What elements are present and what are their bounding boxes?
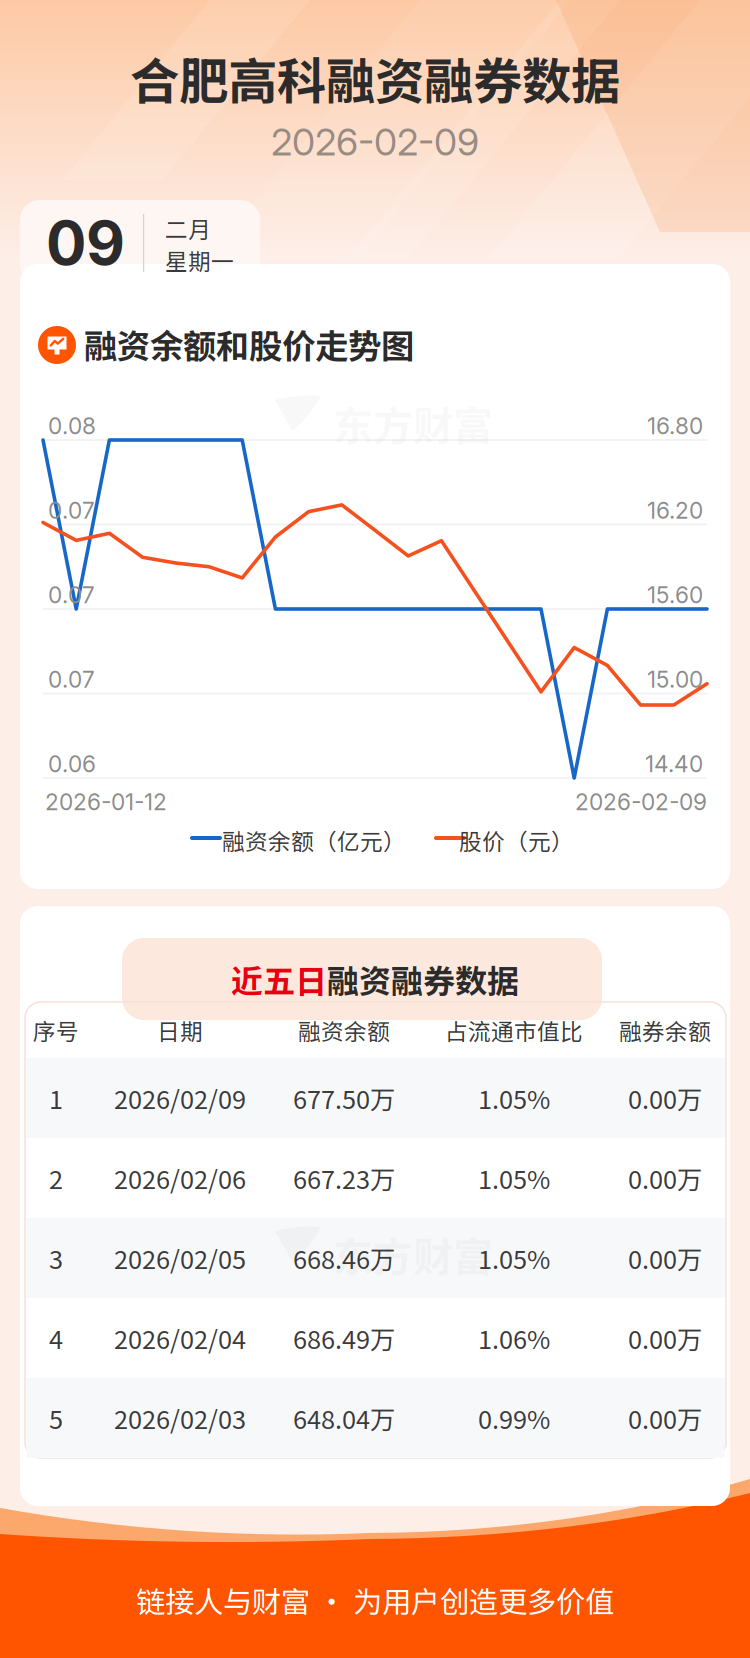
staticText: 667.23万 <box>293 1160 395 1196</box>
staticText: 日期 <box>157 1014 203 1046</box>
staticText: 14.40 <box>645 750 703 778</box>
staticText: 677.50万 <box>293 1080 395 1116</box>
staticText: 星期一 <box>165 244 234 276</box>
staticText: 5 <box>49 1400 63 1436</box>
staticText: 融资余额（亿元） <box>222 824 406 856</box>
staticText: 2026/02/09 <box>114 1080 246 1116</box>
staticText: 2026/02/04 <box>114 1320 246 1356</box>
staticText: 0.07 <box>48 581 95 609</box>
staticText: 0.08 <box>48 412 96 440</box>
staticText: 16.80 <box>647 412 703 440</box>
staticText: 融资融券数据 <box>327 956 519 1002</box>
staticText: 648.04万 <box>293 1400 395 1436</box>
staticText: 2 <box>49 1160 63 1196</box>
staticText: 股价（元） <box>459 824 574 856</box>
staticText: 链接人与财富 · 为用户创造更多价值 <box>136 1579 614 1621</box>
staticText: 2026/02/06 <box>114 1160 246 1196</box>
staticText: 0.07 <box>48 497 95 524</box>
staticText: 东方财富 <box>333 1225 493 1283</box>
staticText: 15.60 <box>647 581 703 609</box>
staticText: 合肥高科融资融券数据 <box>130 42 620 114</box>
staticText: 序号 <box>33 1014 79 1046</box>
staticText: 1.05% <box>478 1160 550 1196</box>
staticText: 东方财富 <box>333 394 493 452</box>
staticText: 1.05% <box>478 1240 550 1276</box>
staticText: 3 <box>49 1240 63 1276</box>
staticText: 16.20 <box>647 497 703 524</box>
staticText: 占流通市值比 <box>445 1014 583 1046</box>
staticText: 近五日 <box>231 956 327 1002</box>
staticText: 2026-02-09 <box>575 788 707 816</box>
staticText: 2026/02/03 <box>114 1400 246 1436</box>
staticText: 0.00万 <box>628 1320 702 1356</box>
staticText: 0.00万 <box>628 1080 702 1116</box>
staticText: 0.07 <box>48 666 95 693</box>
staticText: 686.49万 <box>293 1320 395 1356</box>
staticText: 0.00万 <box>628 1400 702 1436</box>
staticText: 1.06% <box>478 1320 550 1356</box>
staticText: 0.99% <box>478 1400 550 1436</box>
staticText: 2026/02/05 <box>114 1240 246 1276</box>
staticText: 15.00 <box>647 666 703 693</box>
staticText: 09 <box>46 207 125 279</box>
staticText: 融资余额 <box>298 1014 390 1046</box>
staticText: 二月 <box>165 212 211 244</box>
staticText: 2026-01-12 <box>45 788 167 816</box>
staticText: 668.46万 <box>293 1240 395 1276</box>
staticText: 4 <box>49 1320 63 1356</box>
staticText: 融资余额和股价走势图 <box>84 320 414 368</box>
staticText: 0.06 <box>48 750 96 778</box>
staticText: 0.00万 <box>628 1240 702 1276</box>
staticText: 1.05% <box>478 1080 550 1116</box>
staticText: 融券余额 <box>619 1014 711 1046</box>
staticText: 1 <box>49 1080 63 1116</box>
staticText: 0.00万 <box>628 1160 702 1196</box>
staticText: 2026-02-09 <box>271 119 479 165</box>
